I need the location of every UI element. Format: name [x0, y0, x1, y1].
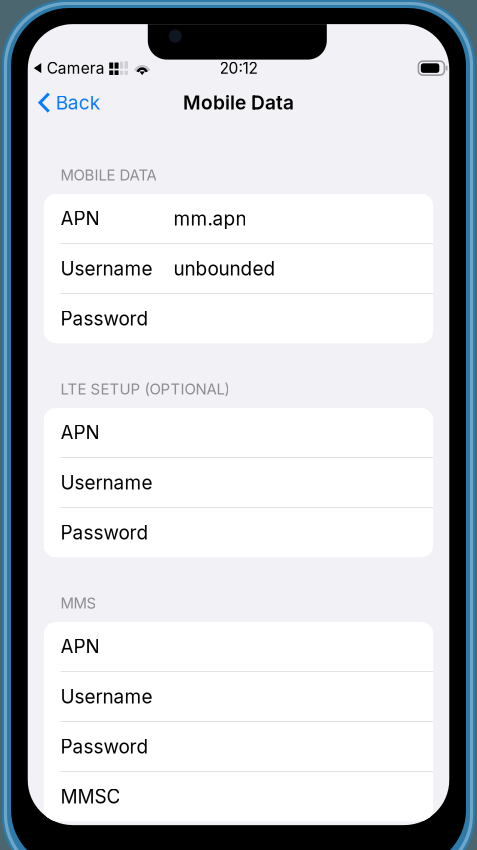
button[interactable]: Password: [44, 722, 433, 771]
staticText: LTE SETUP (OPTIONAL): [60, 380, 229, 398]
staticText: unbounded: [173, 257, 275, 280]
staticText: mm.apn: [173, 207, 246, 230]
staticText: Password: [60, 735, 148, 758]
staticText: Username: [60, 257, 152, 280]
button[interactable]: APN: [44, 408, 433, 457]
button[interactable]: Username: [44, 244, 433, 293]
staticText: MOBILE DATA: [60, 166, 156, 184]
staticText: Username: [60, 471, 152, 494]
button[interactable]: Username: [44, 672, 433, 721]
button[interactable]: APN: [44, 622, 433, 671]
button[interactable]: Password: [44, 294, 433, 343]
staticText: Camera: [47, 59, 105, 77]
button[interactable]: Back: [28, 82, 112, 124]
button[interactable]: MMSC: [44, 772, 433, 821]
button[interactable]: Password: [44, 508, 433, 557]
staticText: MMS: [60, 594, 96, 612]
staticText: Back: [56, 91, 100, 114]
staticText: APN: [60, 207, 99, 230]
staticText: MMSC: [60, 785, 120, 808]
staticText: APN: [60, 635, 99, 658]
button[interactable]: APN: [44, 194, 433, 243]
staticText: Mobile Data: [183, 91, 294, 114]
button[interactable]: Username: [44, 458, 433, 507]
staticText: Password: [60, 521, 148, 544]
staticText: APN: [60, 421, 99, 444]
staticText: Username: [60, 685, 152, 708]
staticText: 20:12: [219, 59, 257, 77]
staticText: Password: [60, 307, 148, 330]
